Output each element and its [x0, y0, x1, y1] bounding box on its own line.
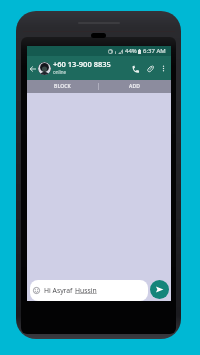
staticText: 6:37 AM: [143, 47, 166, 55]
staticText: +60 13-900 8835: [53, 59, 111, 69]
button[interactable]: BLOCK: [27, 80, 98, 93]
staticText: BLOCK: [54, 83, 71, 90]
staticText: ADD: [129, 83, 141, 90]
button[interactable]: Hi Asyraf: [33, 280, 145, 301]
button[interactable]: Send: [150, 280, 169, 299]
button[interactable]: Call: [130, 63, 141, 74]
button[interactable]: Attach: [145, 63, 156, 74]
staticText: online: [53, 69, 67, 75]
button[interactable]: Back: [29, 65, 36, 72]
staticText: Hussin: [75, 286, 97, 295]
button[interactable]: More options: [159, 64, 168, 73]
staticText: 44%: [125, 47, 137, 55]
button[interactable]: ADD: [99, 80, 171, 93]
staticText: Hi Asyraf: [44, 286, 75, 295]
